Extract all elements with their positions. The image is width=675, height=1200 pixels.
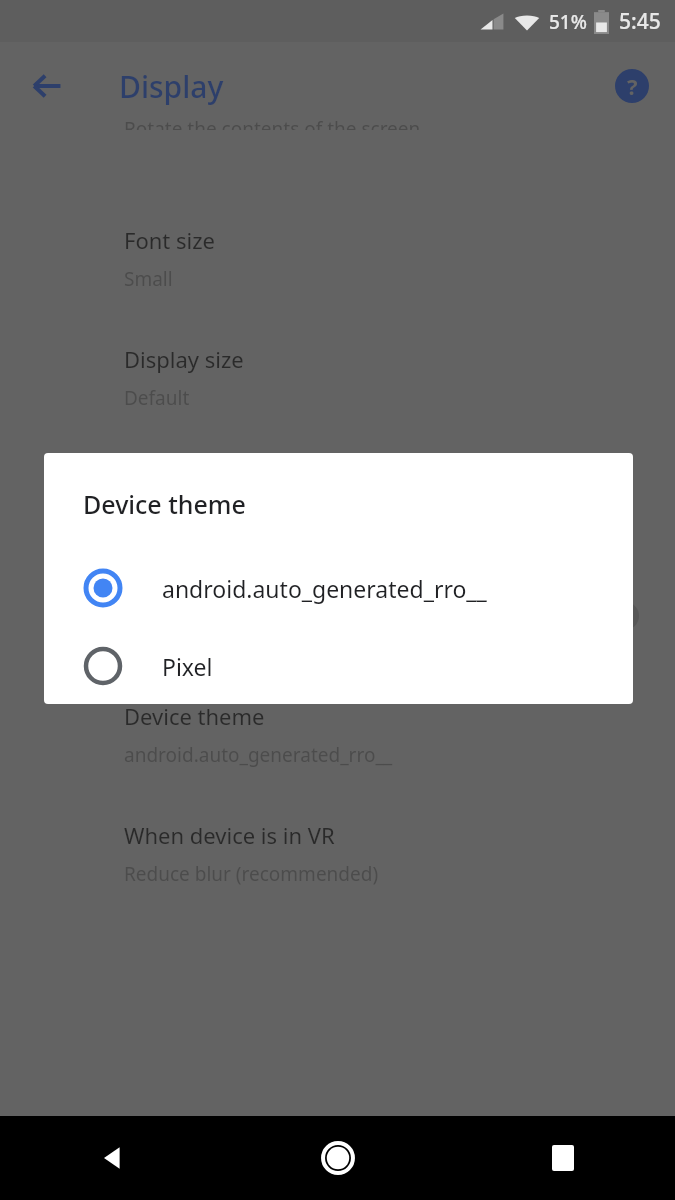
staticText: Rotate the contents of the screen — [124, 116, 421, 130]
staticText: Ambient display — [124, 582, 291, 612]
staticText: Small — [124, 266, 173, 292]
staticText: When device is in VR — [124, 820, 335, 850]
staticText: Font size — [124, 225, 215, 255]
button[interactable]: Ambient display — [0, 556, 675, 675]
staticText: Display size — [124, 344, 244, 374]
staticText: 51% — [549, 9, 587, 35]
button[interactable]: Home — [225, 1116, 450, 1200]
staticText: Reduce blur (recommended) — [124, 861, 379, 887]
staticText: ? — [627, 71, 638, 101]
button[interactable]: Recent apps — [450, 1116, 675, 1200]
staticText: 5:45 — [619, 7, 661, 36]
button[interactable]: Toggle ambient display — [581, 598, 639, 634]
staticText: android.auto_generated_rro__ — [124, 742, 393, 768]
staticText: Device theme — [83, 487, 246, 521]
button[interactable]: Device theme — [0, 675, 675, 794]
button[interactable]: When device is in VR — [0, 794, 675, 913]
staticText: Pixel — [162, 651, 213, 682]
staticText: Display — [119, 66, 224, 107]
button[interactable]: android.auto_generated_rro__ — [44, 548, 633, 628]
button[interactable]: Display size — [0, 318, 675, 437]
button[interactable]: Help — [607, 61, 657, 111]
staticText: android.auto_generated_rro__ — [162, 573, 487, 604]
staticText: Off — [124, 504, 152, 530]
staticText: Default — [124, 385, 190, 411]
button[interactable]: Screen saver — [0, 437, 675, 556]
button[interactable]: Back — [22, 61, 72, 111]
button[interactable]: Font size — [0, 199, 675, 318]
staticText: Device theme — [124, 701, 265, 731]
button[interactable]: Back — [0, 1116, 225, 1200]
button[interactable]: Pixel — [44, 628, 633, 704]
